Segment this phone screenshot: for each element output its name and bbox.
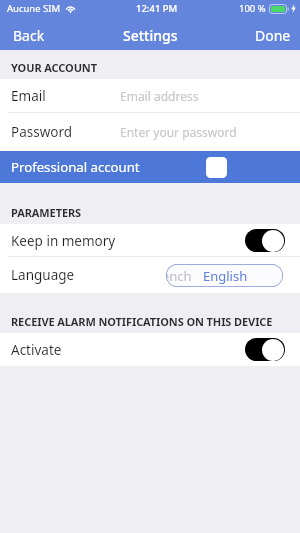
staticText: 100 % <box>239 2 266 15</box>
staticText: Enter your password <box>120 124 237 140</box>
staticText: Aucune SIM <box>7 2 61 15</box>
staticText: Settings <box>123 26 178 45</box>
staticText: Back <box>13 26 45 45</box>
button[interactable]: Email <box>0 79 300 113</box>
staticText: PARAMETERS <box>11 205 82 220</box>
staticText: Language <box>11 266 75 284</box>
staticText: YOUR ACCOUNT <box>11 60 97 75</box>
staticText: Email address <box>120 88 199 104</box>
staticText: Keep in memory <box>11 232 116 250</box>
button[interactable]: English <box>203 267 248 285</box>
staticText: RECEIVE ALARM NOTIFICATIONS ON THIS DEVI… <box>11 314 273 329</box>
staticText: Password <box>11 123 73 141</box>
staticText: Professional account <box>11 158 140 176</box>
button[interactable]: Keep in memory toggle <box>245 229 285 252</box>
button[interactable]: Done <box>245 21 300 50</box>
button[interactable]: Activate toggle <box>245 338 285 361</box>
staticText: Activate <box>11 341 62 359</box>
button[interactable]: Back <box>0 21 55 50</box>
button[interactable]: French <box>166 267 192 285</box>
staticText: 12:41 PM <box>136 2 178 15</box>
button[interactable]: Password <box>0 113 300 151</box>
staticText: Email <box>11 87 46 105</box>
staticText: Done <box>255 26 291 45</box>
button[interactable]: Professional account <box>0 151 300 183</box>
